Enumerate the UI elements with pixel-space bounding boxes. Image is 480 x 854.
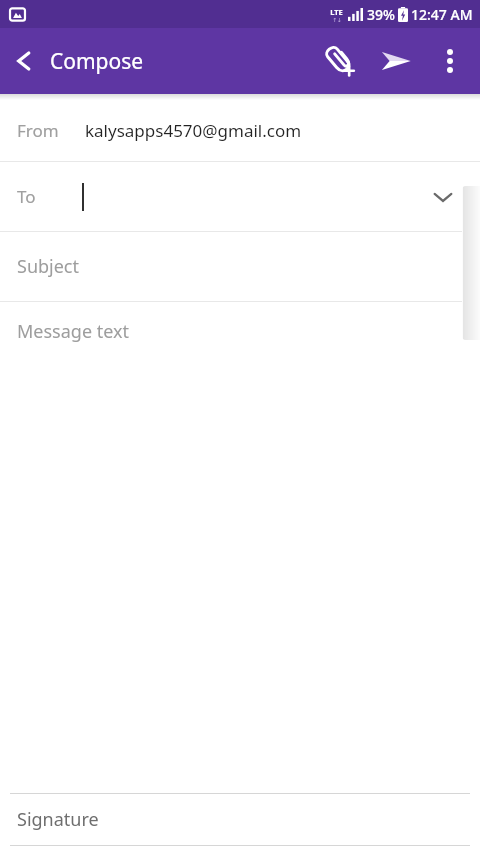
staticText: ↑↓ xyxy=(332,17,342,23)
button[interactable]: Back xyxy=(0,28,158,94)
staticText: 39% xyxy=(367,5,395,24)
button[interactable]: To xyxy=(0,162,480,231)
staticText: From xyxy=(17,119,59,142)
staticText: Message text xyxy=(17,319,130,344)
staticText: kalysapps4570@gmail.com xyxy=(85,119,302,142)
button[interactable]: More options xyxy=(424,35,476,87)
button[interactable]: Send xyxy=(368,33,424,89)
staticText: To xyxy=(17,185,36,208)
other: Back xyxy=(12,49,36,73)
staticText: Signature xyxy=(17,807,99,832)
button[interactable]: Attach file xyxy=(312,33,368,89)
button[interactable]: Show Cc and Bcc xyxy=(428,182,458,212)
staticText: Compose xyxy=(50,47,144,76)
button[interactable]: Message text xyxy=(0,302,480,793)
staticText: LTE xyxy=(330,7,343,17)
button[interactable]: Signature xyxy=(0,794,480,845)
button[interactable]: From xyxy=(0,100,480,161)
button[interactable]: Subject xyxy=(0,232,480,301)
staticText: Subject xyxy=(17,254,80,279)
staticText: 12:47 AM xyxy=(411,5,473,24)
